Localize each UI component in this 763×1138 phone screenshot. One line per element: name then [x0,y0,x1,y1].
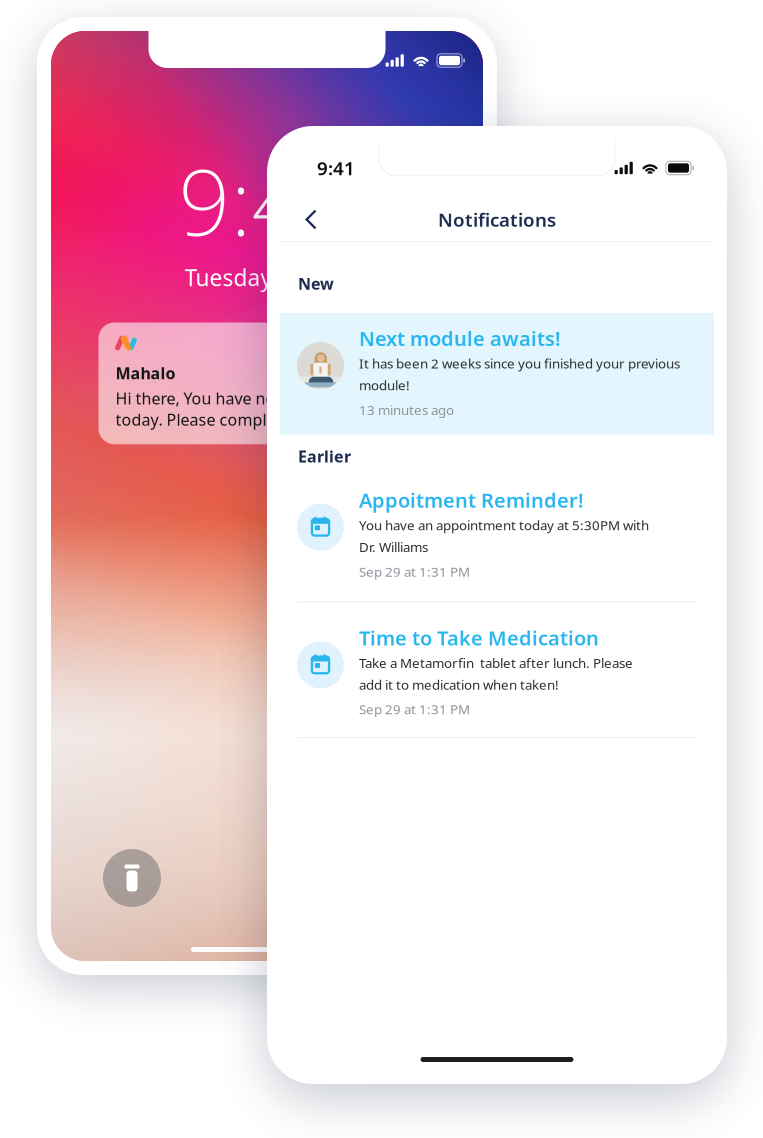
staticText: You have an appointment today at 5:30PM … [359,516,649,534]
staticText: Sep 29 at 1:31 PM [359,563,470,580]
staticText: 9:41 [178,140,355,260]
staticText: today. Please complete the module. [115,409,385,430]
staticText: It has been 2 weeks since you finished y… [359,355,680,372]
staticText: Earlier [298,446,351,467]
staticText: Time to Take Medication [359,624,599,651]
staticText: Dr. Williams [359,538,428,556]
staticText: Sep 29 at 1:31 PM [359,700,470,718]
staticText: module! [359,376,410,394]
staticText: Take a Metamorfin tablet after lunch. Pl… [359,654,633,672]
staticText: Tuesday, June 9 [184,262,349,292]
staticText: Notifications [438,207,556,232]
staticText: 9:41 [317,156,355,180]
staticText: Next module awaits! [359,325,561,352]
staticText: add it to medication when taken! [359,676,559,693]
staticText: Hi there, You have not completed your mo… [115,388,434,409]
button[interactable]: Flashlight [103,849,161,907]
staticText: Appoitment Reminder! [359,487,584,513]
staticText: 13 minutes ago [359,401,454,419]
button[interactable]: Next module awaits! [280,313,714,435]
button[interactable]: Time to Take Medication [280,602,714,737]
staticText: New [298,273,334,294]
button[interactable]: Appoitment Reminder! [280,478,714,601]
button[interactable]: Back [289,198,333,240]
staticText: Mahalo [115,362,175,384]
